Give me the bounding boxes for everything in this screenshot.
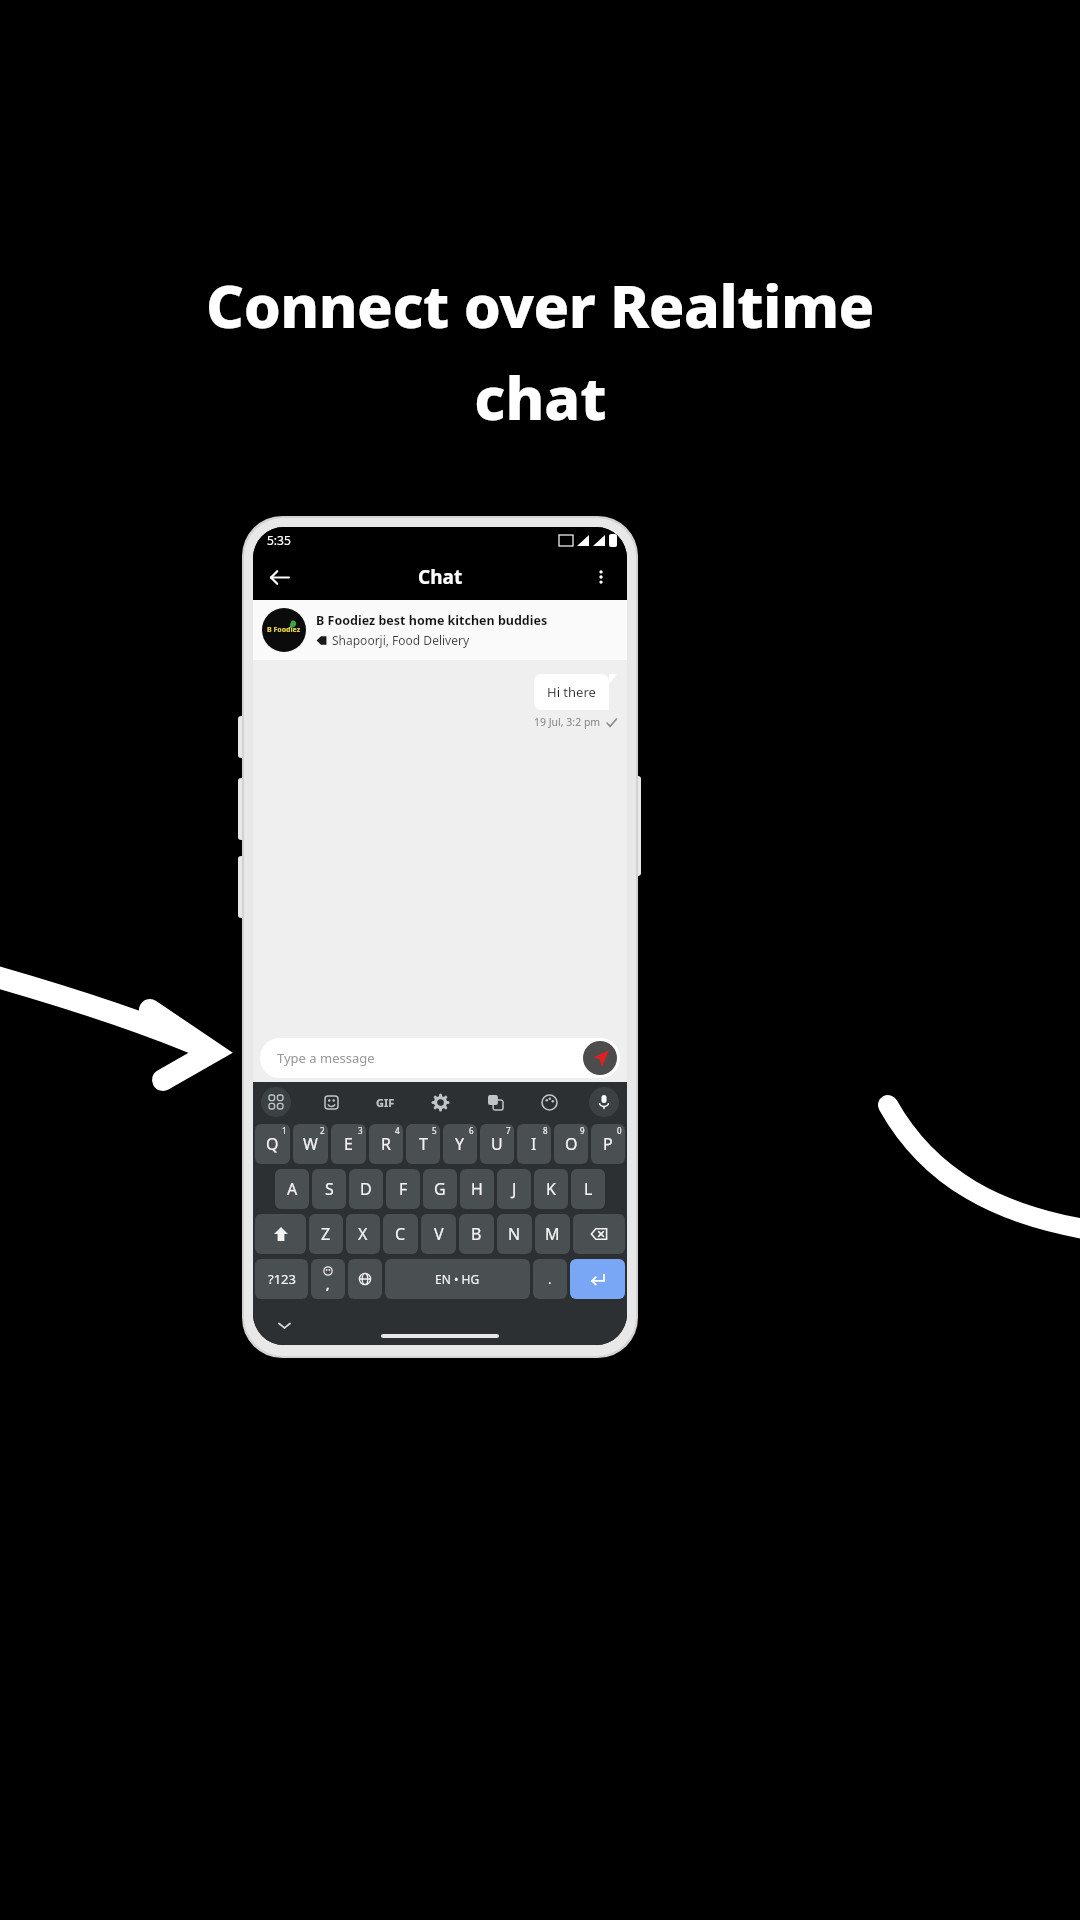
button[interactable]: Hi there [534, 674, 609, 710]
button[interactable]: Type a message [260, 1038, 620, 1078]
button[interactable]: Hide keyboard [271, 1312, 297, 1338]
button[interactable]: A [275, 1169, 309, 1209]
button[interactable]: X [346, 1214, 380, 1254]
staticText: 1 [282, 1125, 287, 1136]
staticText: 4 [395, 1125, 400, 1136]
staticText: Chat [418, 564, 463, 590]
button[interactable]: Keyboard tools [261, 1087, 291, 1117]
button[interactable]: G [423, 1169, 457, 1209]
staticText: E [344, 1133, 353, 1155]
staticText: A [287, 1178, 298, 1200]
staticText: Type a message [277, 1049, 375, 1067]
staticText: X [358, 1223, 368, 1245]
staticText: C [395, 1223, 406, 1245]
button[interactable]: T [406, 1124, 440, 1164]
button[interactable]: F [386, 1169, 420, 1209]
staticText: 0 [617, 1125, 622, 1136]
staticText: Connect over Realtime [206, 265, 874, 345]
staticText: M [545, 1223, 560, 1245]
button[interactable]: Shift [255, 1214, 306, 1254]
button[interactable]: R [369, 1124, 403, 1164]
staticText: chat [474, 357, 607, 437]
staticText: 7 [506, 1125, 511, 1136]
staticText: 3 [358, 1125, 363, 1136]
staticText: H [471, 1178, 483, 1200]
button[interactable]: U [480, 1124, 514, 1164]
button[interactable]: Y [443, 1124, 477, 1164]
button[interactable]: J [497, 1169, 531, 1209]
button[interactable]: W [293, 1124, 328, 1164]
button[interactable]: M [535, 1214, 570, 1254]
button[interactable]: D [349, 1169, 383, 1209]
staticText: U [491, 1133, 503, 1155]
staticText: L [584, 1178, 593, 1200]
button[interactable]: E [331, 1124, 366, 1164]
staticText: Hi there [547, 683, 596, 701]
button[interactable]: Q [255, 1124, 290, 1164]
staticText: . [548, 1270, 552, 1288]
button[interactable]: V [421, 1214, 456, 1254]
button[interactable]: Emoji [311, 1259, 345, 1299]
button[interactable]: Translate [480, 1087, 510, 1117]
button[interactable]: More options [581, 557, 621, 597]
staticText: ?123 [268, 1270, 296, 1288]
button[interactable]: Z [309, 1214, 343, 1254]
staticText: Y [455, 1133, 465, 1155]
button[interactable]: B Foodiez [253, 600, 627, 660]
button[interactable]: H [460, 1169, 494, 1209]
staticText: D [360, 1178, 372, 1200]
staticText: , [326, 1276, 330, 1292]
staticText: GIF [376, 1095, 395, 1110]
staticText: S [325, 1178, 334, 1200]
button[interactable]: L [571, 1169, 605, 1209]
button[interactable]: EN • HG [385, 1259, 530, 1299]
button[interactable]: GIF [370, 1087, 400, 1117]
staticText: T [419, 1133, 428, 1155]
staticText: Q [266, 1133, 279, 1155]
staticText: F [399, 1178, 408, 1200]
button[interactable]: Stickers [316, 1087, 346, 1117]
staticText: W [303, 1133, 318, 1155]
staticText: 19 Jul, 3:2 pm [534, 715, 601, 729]
button[interactable]: P [591, 1124, 625, 1164]
staticText: EN • HG [435, 1271, 480, 1287]
button[interactable]: Change language [348, 1259, 382, 1299]
button[interactable]: ?123 [255, 1259, 308, 1299]
staticText: 8 [543, 1125, 548, 1136]
button[interactable]: S [312, 1169, 346, 1209]
staticText: 2 [320, 1125, 325, 1136]
button[interactable]: Send [583, 1041, 617, 1075]
staticText: N [508, 1223, 521, 1245]
button[interactable]: B [459, 1214, 494, 1254]
staticText: 5 [432, 1125, 437, 1136]
button[interactable]: N [497, 1214, 532, 1254]
button[interactable]: O [554, 1124, 588, 1164]
staticText: B Foodiez best home kitchen buddies [316, 612, 548, 629]
button[interactable]: C [383, 1214, 418, 1254]
staticText: 9 [580, 1125, 585, 1136]
button[interactable]: Themes [534, 1087, 564, 1117]
staticText: O [565, 1133, 578, 1155]
staticText: B [471, 1223, 482, 1245]
staticText: I [531, 1133, 537, 1155]
staticText: Shapoorji, Food Delivery [332, 632, 470, 648]
staticText: 5:35 [267, 532, 291, 548]
button[interactable]: K [534, 1169, 568, 1209]
button[interactable]: Settings [425, 1087, 455, 1117]
button[interactable]: . [533, 1259, 567, 1299]
staticText: 6 [469, 1125, 474, 1136]
button[interactable]: Voice input [589, 1087, 619, 1117]
button[interactable]: I [517, 1124, 551, 1164]
staticText: P [603, 1133, 613, 1155]
button[interactable]: Backspace [573, 1214, 625, 1254]
button[interactable]: Back [259, 557, 299, 597]
staticText: G [434, 1178, 446, 1200]
staticText: K [546, 1178, 556, 1200]
staticText: J [512, 1178, 517, 1200]
button[interactable]: Enter [570, 1259, 625, 1299]
staticText: V [434, 1223, 444, 1245]
staticText: B Foodiez [267, 625, 301, 635]
staticText: R [381, 1133, 391, 1155]
staticText: Z [321, 1223, 331, 1245]
